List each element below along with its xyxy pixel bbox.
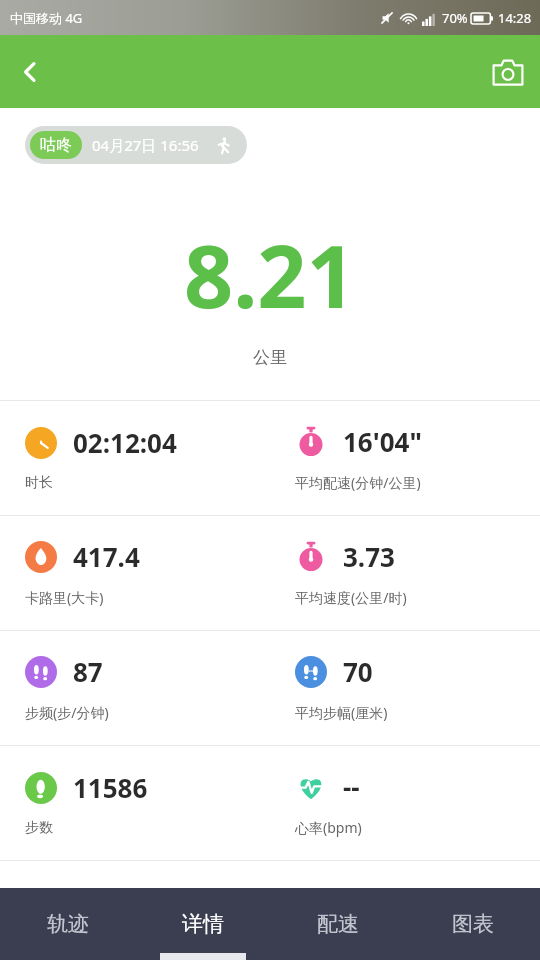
staticText: -- [343,769,360,804]
button[interactable]: 02:12:04 [0,401,270,515]
staticText: 步数 [25,819,53,837]
button[interactable]: 详情 [135,888,270,960]
staticText: 卡路里(大卡) [25,588,104,607]
staticText: 中国移动 4G [10,9,83,27]
staticText: 图表 [452,911,494,937]
staticText: 70 [343,654,373,689]
staticText: 02:12:04 [73,425,177,460]
staticText: 咕咚 [40,135,72,155]
button[interactable]: 70 [270,631,540,745]
staticText: 平均配速(分钟/公里) [295,473,421,492]
button[interactable]: 417.4 [0,516,270,630]
button[interactable]: 咕咚 [25,126,247,164]
staticText: 417.4 [73,539,140,574]
staticText: 公里 [253,347,287,368]
button[interactable]: -- [270,746,540,860]
staticText: 时长 [25,474,53,492]
button[interactable]: Camera [484,48,532,96]
staticText: 16'04" [343,424,422,459]
staticText: 轨迹 [47,911,89,937]
staticText: 8.21 [184,216,356,333]
staticText: 详情 [182,911,224,937]
staticText: 平均速度(公里/时) [295,588,407,607]
staticText: 87 [73,654,103,689]
staticText: 心率(bpm) [295,818,362,837]
button[interactable]: 轨迹 [0,888,135,960]
button[interactable]: 3.73 [270,516,540,630]
button[interactable]: Back [6,48,54,96]
staticText: 步频(步/分钟) [25,703,109,722]
button[interactable]: 配速 [270,888,405,960]
button[interactable]: 87 [0,631,270,745]
staticText: 04月27日 16:56 [92,135,199,155]
staticText: 配速 [317,911,359,937]
staticText: 11586 [73,770,148,805]
button[interactable]: 16'04" [270,401,540,515]
staticText: 14:28 [498,9,532,27]
staticText: 70% [442,9,468,27]
button[interactable]: 图表 [405,888,540,960]
staticText: 平均步幅(厘米) [295,703,388,722]
button[interactable]: 11586 [0,746,270,860]
staticText: 3.73 [343,539,395,574]
